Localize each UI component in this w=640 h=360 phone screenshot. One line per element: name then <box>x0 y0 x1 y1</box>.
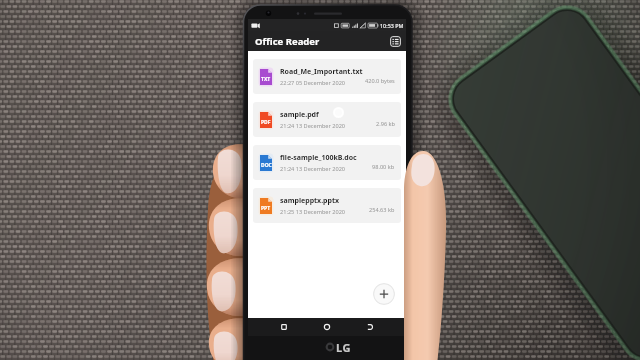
button[interactable]: Change view <box>390 36 401 47</box>
button[interactable]: Add <box>373 283 395 305</box>
button[interactable]: PPT <box>253 188 401 223</box>
button[interactable]: Home <box>321 321 333 333</box>
button[interactable]: Recent apps <box>278 321 290 333</box>
staticText: 2.96 kb <box>376 120 395 128</box>
staticText: sample.pdf <box>280 110 319 120</box>
staticText: PDF <box>261 119 271 126</box>
staticText: 98.00 kb <box>372 163 395 171</box>
staticText: 21:24 13 December 2020 <box>280 165 346 173</box>
staticText: 10:53 PM <box>380 22 404 29</box>
staticText: Road_Me_Important.txt <box>280 67 363 77</box>
staticText: samplepptx.pptx <box>280 196 340 206</box>
staticText: 22:27 05 December 2020 <box>280 79 346 87</box>
staticText: 254.63 kb <box>369 206 395 214</box>
staticText: 21:25 13 December 2020 <box>280 208 346 216</box>
staticText: 420.0 bytes <box>365 77 395 85</box>
button[interactable]: PDF <box>253 102 401 137</box>
staticText: LG <box>336 340 352 355</box>
staticText: TXT <box>261 76 271 83</box>
staticText: Office Reader <box>255 35 320 48</box>
staticText: 21:24 13 December 2020 <box>280 122 346 130</box>
button[interactable]: DOC <box>253 145 401 180</box>
staticText: PPT <box>261 205 271 212</box>
button[interactable]: Back <box>364 321 376 333</box>
button[interactable]: TXT <box>253 59 401 94</box>
staticText: DOC <box>261 162 272 169</box>
staticText: file-sample_100kB.doc <box>280 153 357 163</box>
